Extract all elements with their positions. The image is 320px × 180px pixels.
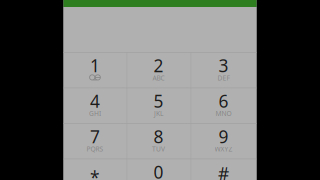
button[interactable]: 4 bbox=[63, 87, 126, 123]
staticText: GHI bbox=[89, 109, 101, 118]
staticText: 5 bbox=[153, 89, 163, 112]
staticText: 3 bbox=[218, 54, 228, 77]
staticText: 7 bbox=[90, 125, 100, 148]
staticText: 8 bbox=[153, 125, 163, 148]
button[interactable]: 6 bbox=[190, 87, 256, 123]
staticText: 9 bbox=[218, 125, 228, 148]
staticText: * bbox=[90, 166, 100, 180]
button[interactable]: 9 bbox=[190, 123, 256, 158]
staticText: 6 bbox=[218, 89, 228, 112]
button[interactable]: 3 bbox=[190, 52, 256, 87]
staticText: TUV bbox=[152, 145, 165, 153]
button[interactable]: 7 bbox=[63, 123, 126, 158]
staticText: 0 bbox=[153, 160, 163, 180]
button[interactable]: * bbox=[63, 158, 126, 180]
staticText: DEF bbox=[217, 74, 229, 82]
button[interactable]: # bbox=[190, 158, 256, 180]
staticText: WXYZ bbox=[214, 145, 232, 153]
staticText: 2 bbox=[153, 54, 163, 77]
staticText: ABC bbox=[152, 74, 164, 82]
button[interactable]: 1 bbox=[63, 52, 126, 87]
staticText: 1 bbox=[90, 54, 100, 77]
button[interactable]: 8 bbox=[126, 123, 190, 158]
button[interactable]: 2 bbox=[126, 52, 190, 87]
button[interactable]: 5 bbox=[126, 87, 190, 123]
button[interactable]: 0 bbox=[126, 158, 190, 180]
staticText: JKL bbox=[154, 109, 163, 118]
staticText: PQRS bbox=[86, 145, 103, 153]
staticText: # bbox=[218, 162, 229, 180]
staticText: 4 bbox=[90, 89, 100, 112]
staticText: MNO bbox=[215, 109, 231, 118]
